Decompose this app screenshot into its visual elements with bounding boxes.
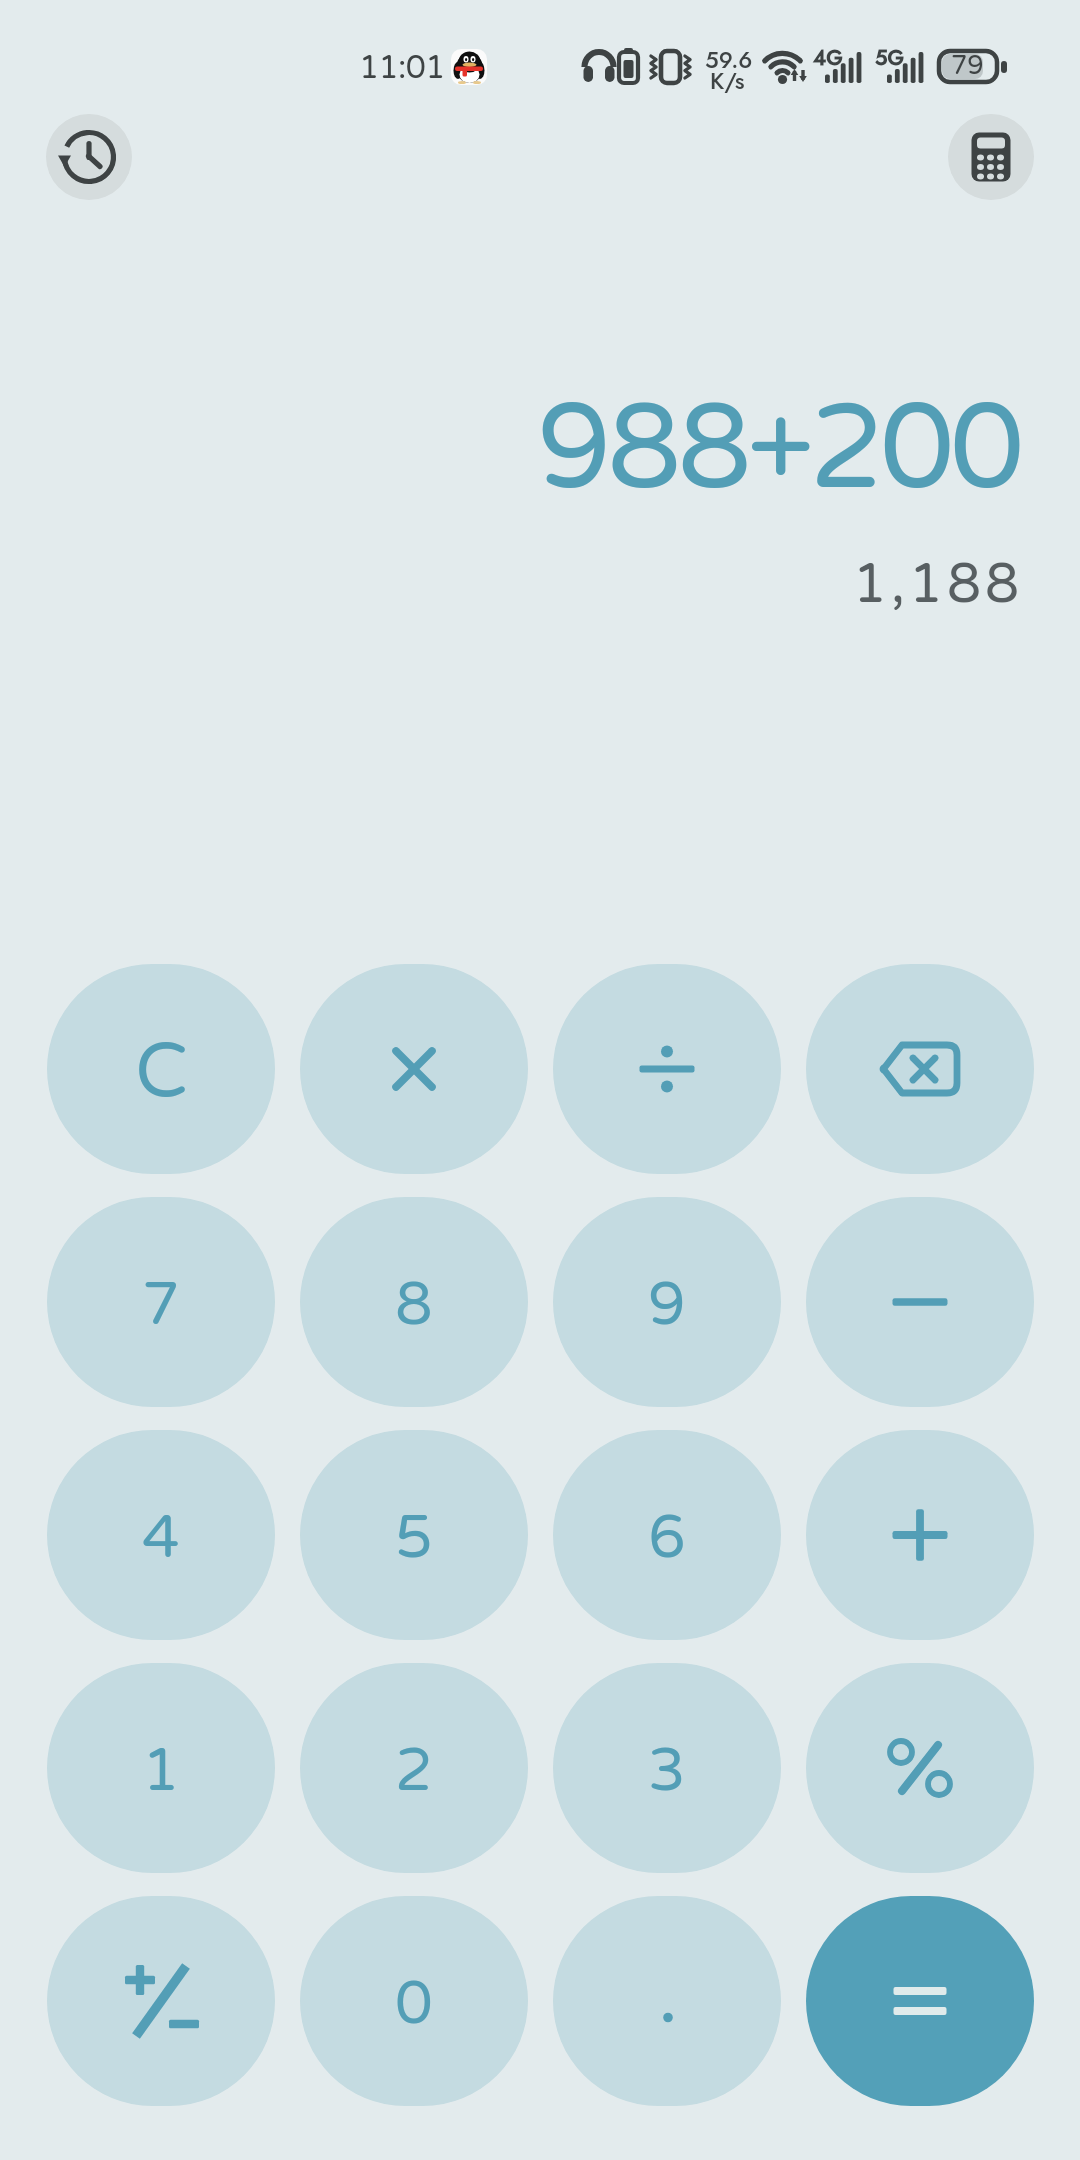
staticText: C <box>135 1026 188 1118</box>
button[interactable]: Decimal point <box>553 1896 781 2106</box>
button[interactable]: Percent <box>806 1663 1034 1873</box>
staticText: 9 <box>648 1269 686 1341</box>
button[interactable]: 2 <box>300 1663 528 1873</box>
staticText: 2 <box>395 1735 433 1807</box>
button[interactable]: Minus <box>806 1197 1034 1407</box>
staticText: 7 <box>142 1269 180 1341</box>
staticText: 6 <box>648 1502 686 1574</box>
button[interactable]: 4 <box>47 1430 275 1640</box>
button[interactable]: 3 <box>553 1663 781 1873</box>
staticText: 5G <box>875 43 905 73</box>
staticText: 8 <box>395 1269 433 1341</box>
staticText: 59.6 <box>705 43 753 76</box>
button[interactable]: 8 <box>300 1197 528 1407</box>
button[interactable]: 7 <box>47 1197 275 1407</box>
staticText: 1 <box>142 1735 180 1807</box>
staticText: 4 <box>142 1502 180 1574</box>
staticText: 988+200 <box>0 378 1020 521</box>
button[interactable]: Divide <box>553 964 781 1174</box>
staticText: 11:01 <box>359 49 445 88</box>
button[interactable]: 0 <box>300 1896 528 2106</box>
button[interactable]: Plus <box>806 1430 1034 1640</box>
button[interactable]: History <box>46 114 132 200</box>
button[interactable]: Multiply <box>300 964 528 1174</box>
staticText: 3 <box>648 1735 686 1807</box>
button[interactable]: Plus minus <box>47 1896 275 2106</box>
button[interactable]: 9 <box>553 1197 781 1407</box>
staticText: K/s <box>710 64 745 97</box>
staticText: 4G <box>813 43 843 73</box>
staticText: 5 <box>395 1502 433 1574</box>
button[interactable]: Backspace <box>806 964 1034 1174</box>
button[interactable]: Scientific calculator <box>948 114 1034 200</box>
staticText: 0 <box>395 1968 433 2040</box>
button[interactable]: 1 <box>47 1663 275 1873</box>
button[interactable]: 5 <box>300 1430 528 1640</box>
staticText: 1,188 <box>0 552 1023 618</box>
button[interactable]: Equals <box>806 1896 1034 2106</box>
button[interactable]: Clear <box>47 964 275 1174</box>
staticText: 79 <box>951 50 984 81</box>
button[interactable]: 6 <box>553 1430 781 1640</box>
